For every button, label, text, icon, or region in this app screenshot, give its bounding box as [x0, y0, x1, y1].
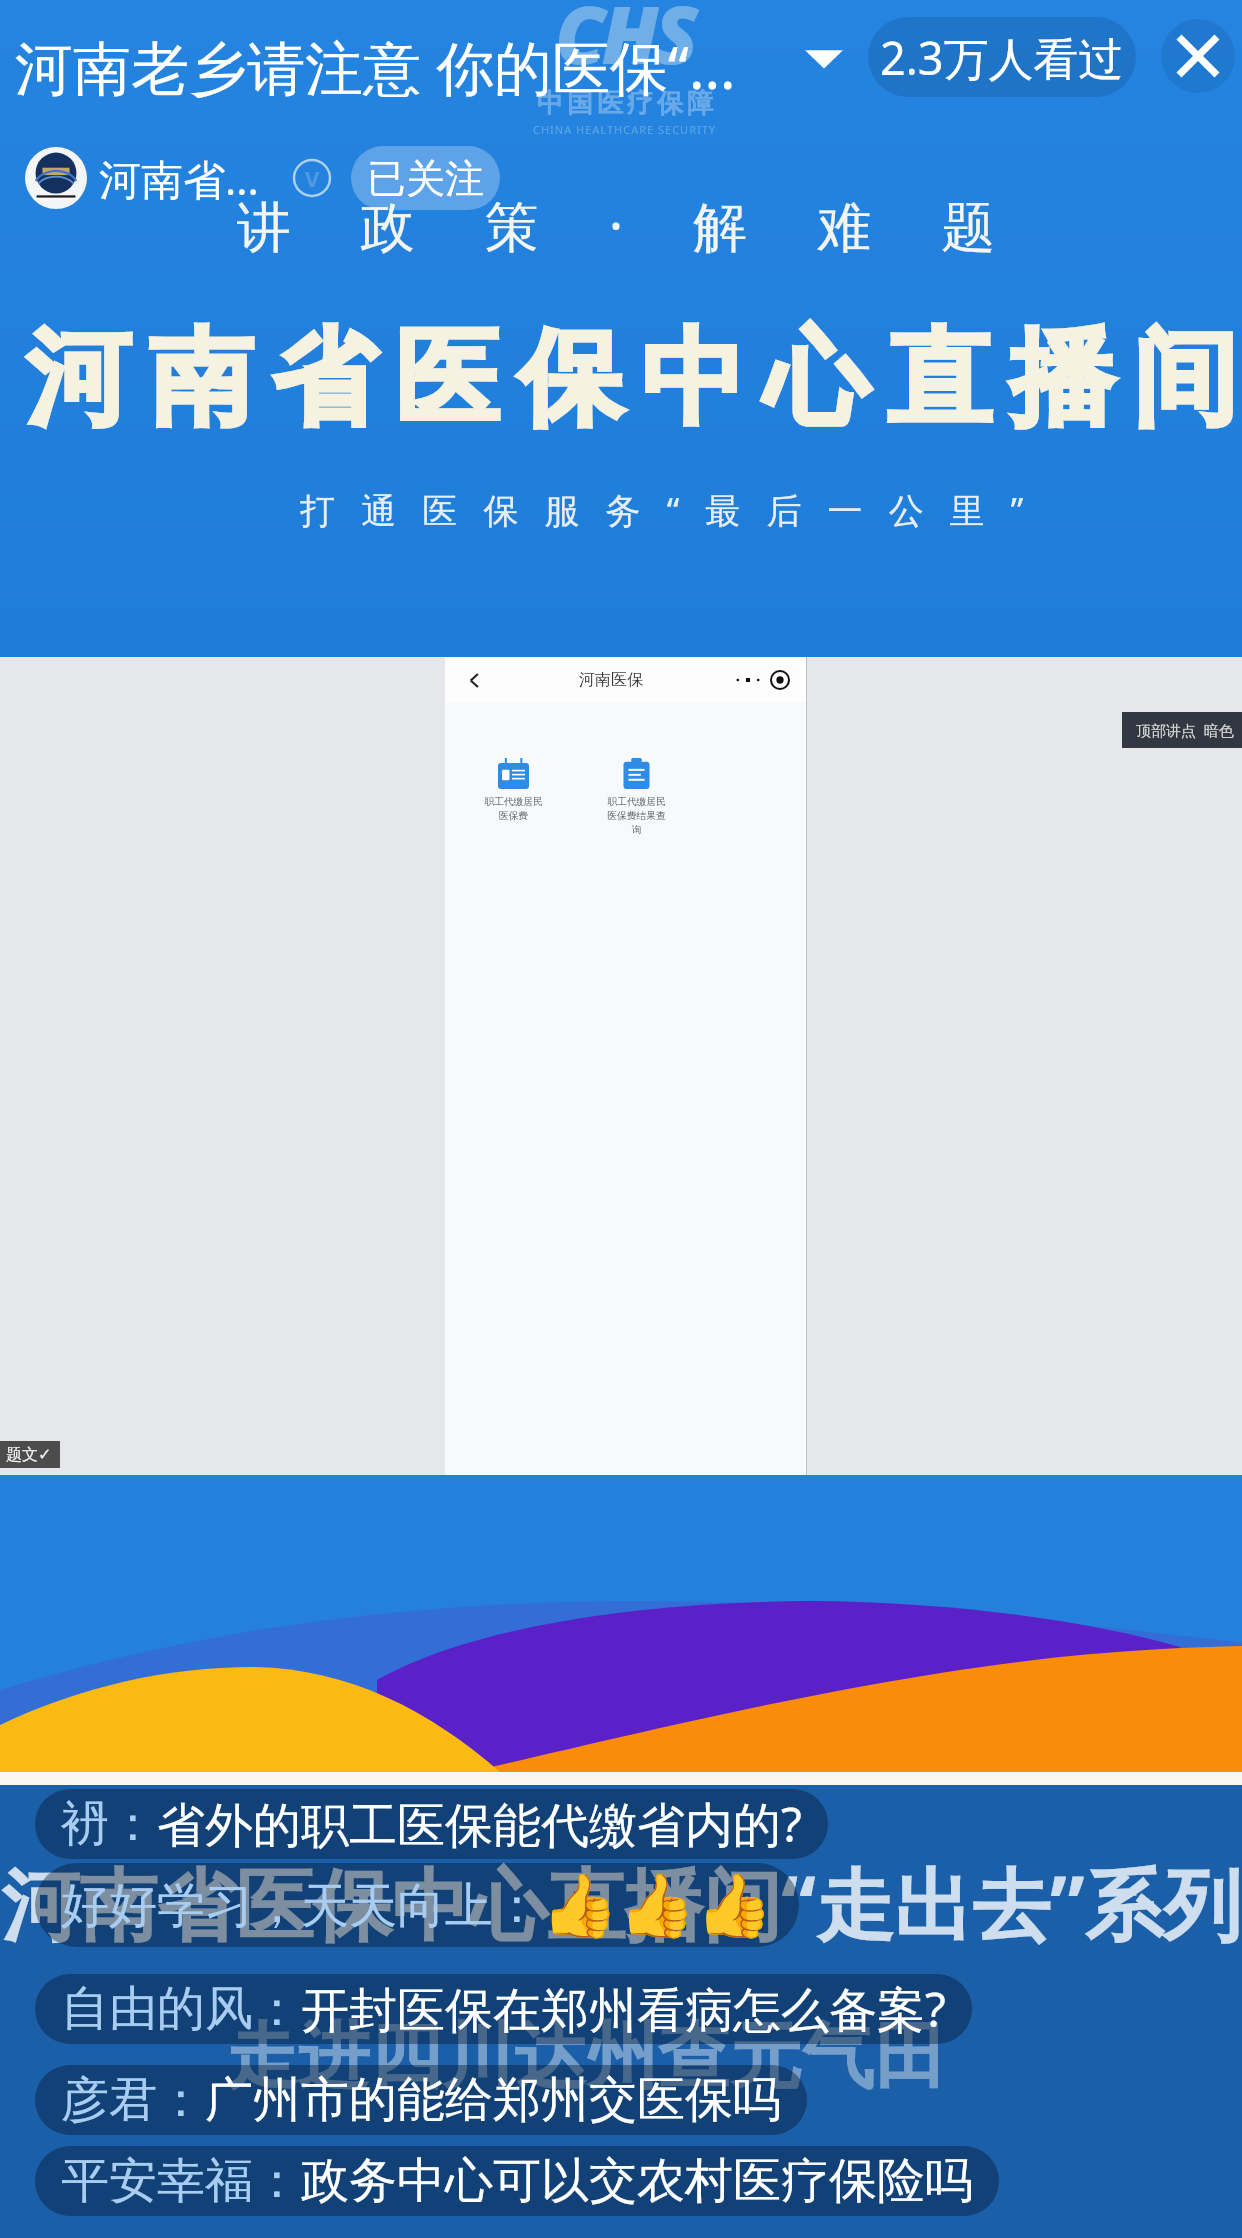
staticText: 袇： — [61, 1794, 157, 1854]
button[interactable]: Back — [461, 667, 487, 693]
staticText: 职工代缴居民 医保费结果查 询 — [607, 796, 666, 836]
staticText: 平安幸福： — [61, 2151, 301, 2211]
staticText: 讲 政 策 · 解 难 题 — [9, 188, 1242, 262]
button[interactable]: Avatar — [25, 147, 87, 209]
staticText: 河南省... — [99, 150, 259, 207]
button[interactable]: 平安幸福： — [35, 2146, 999, 2216]
button[interactable]: Close mini program — [768, 668, 792, 692]
staticText: CHS — [555, 0, 695, 87]
button[interactable]: 职工代缴居民 医保费 — [452, 758, 574, 822]
staticText: 职工代缴居民 医保费 — [484, 796, 543, 822]
staticText: 河南医保 — [579, 670, 643, 690]
button[interactable]: 袇： — [35, 1789, 828, 1859]
button[interactable]: 河南老乡请注意 你的医保“... — [15, 18, 736, 106]
staticText: 题文✓ — [6, 1445, 52, 1465]
staticText: 开封医保在郑州看病怎么备案? — [301, 1976, 946, 2042]
staticText: 👍👍👍 — [541, 1869, 773, 1942]
button[interactable]: 自由的风： — [35, 1974, 972, 2044]
staticText: 走进四川达州查元气田 — [0, 2012, 1207, 2103]
staticText: 顶部讲点 暗色 — [1136, 720, 1234, 740]
staticText: 2.3万人看过 — [880, 27, 1124, 88]
staticText: 好好学习，天天向上： — [61, 1876, 541, 1936]
staticText: 政务中心可以交农村医疗保险吗 — [301, 2151, 973, 2211]
staticText: 河南省医保中心直播间“走出去”系列 — [0, 1850, 1242, 1957]
staticText: 彦君： — [61, 2070, 205, 2130]
staticText: 省外的职工医保能代缴省内的? — [157, 1791, 802, 1857]
staticText: 中国医疗保障 — [535, 87, 715, 120]
button[interactable]: 已关注 — [351, 146, 500, 210]
staticText: 打 通 医 保 服 务 “ 最 后 一 公 里 ” — [45, 486, 1242, 534]
button[interactable]: More options — [735, 667, 761, 693]
staticText: 自由的风： — [61, 1979, 301, 2039]
button[interactable]: Close — [1161, 19, 1235, 93]
staticText: 河南老乡请注意 你的医保“... — [15, 27, 736, 106]
staticText: 广州市的能给郑州交医保吗 — [205, 2070, 781, 2130]
button[interactable]: 彦君： — [35, 2065, 807, 2135]
staticText: 已关注 — [367, 154, 484, 203]
button[interactable]: Expand title — [795, 28, 853, 86]
button[interactable]: 2.3万人看过 — [868, 17, 1136, 97]
staticText: V — [305, 163, 320, 193]
staticText: 河南省医保中心直播间 — [20, 314, 1242, 445]
staticText: CHINA HEALTHCARE SECURITY — [533, 122, 717, 137]
button[interactable]: 好好学习，天天向上： — [35, 1863, 799, 1947]
button[interactable]: 职工代缴居民 医保费结果查 询 — [575, 758, 697, 836]
